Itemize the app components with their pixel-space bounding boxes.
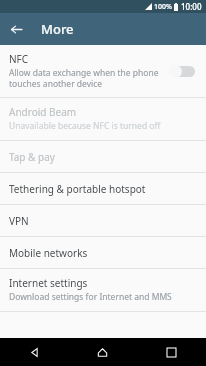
staticText: NFC xyxy=(9,52,29,66)
button[interactable]: NFC xyxy=(0,45,206,97)
staticText: Tap & pay xyxy=(9,150,55,164)
button[interactable]: Recent apps xyxy=(137,338,206,366)
button[interactable]: VPN xyxy=(0,205,206,236)
button[interactable]: Home xyxy=(68,338,137,366)
button[interactable]: Tethering & portable hotspot xyxy=(0,173,206,204)
staticText: More xyxy=(41,20,74,38)
staticText: 10:00 xyxy=(181,1,202,12)
staticText: Tethering & portable hotspot xyxy=(9,182,146,196)
staticText: VPN xyxy=(9,214,29,228)
button: Android Beam xyxy=(0,98,206,140)
button[interactable]: Back xyxy=(0,13,32,45)
button: Tap & pay xyxy=(0,141,206,172)
button[interactable]: NFC toggle, off xyxy=(168,63,198,79)
staticText: Allow data exchange when the phone touch… xyxy=(9,67,159,89)
staticText: 100% xyxy=(154,2,172,12)
staticText: Mobile networks xyxy=(9,246,88,260)
button[interactable]: Back xyxy=(0,338,68,366)
staticText: Android Beam xyxy=(9,105,77,119)
button[interactable]: Internet settings xyxy=(0,269,206,311)
button[interactable]: Mobile networks xyxy=(0,237,206,268)
staticText: Internet settings xyxy=(9,276,88,290)
staticText: Unavailable because NFC is turned off xyxy=(9,120,161,132)
staticText: Download settings for Internet and MMS xyxy=(9,291,172,303)
